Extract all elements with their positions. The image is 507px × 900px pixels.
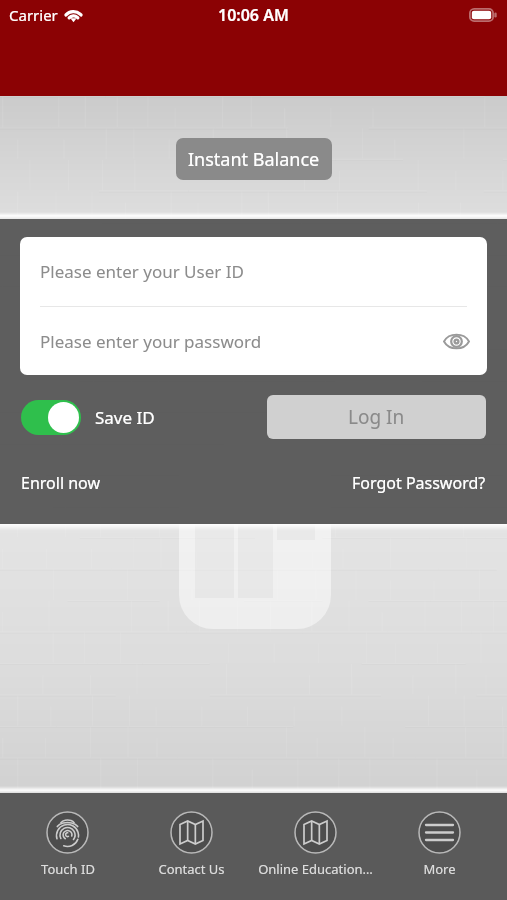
staticText: More: [423, 860, 456, 878]
button[interactable]: Instant Balance: [176, 138, 332, 180]
staticText: Online Education…: [258, 860, 373, 878]
staticText: Log In: [348, 404, 405, 430]
staticText: Please enter your password: [40, 330, 262, 353]
staticText: Touch ID: [41, 860, 95, 878]
button[interactable]: Please enter your password: [20, 307, 487, 375]
staticText: 10:06 AM: [218, 4, 289, 26]
button[interactable]: Contact Us: [129, 793, 253, 878]
staticText: Contact Us: [158, 860, 225, 878]
staticText: Carrier: [9, 5, 58, 25]
button[interactable]: More: [377, 793, 501, 878]
staticText: Please enter your User ID: [40, 260, 244, 283]
button[interactable]: Please enter your User ID: [20, 237, 487, 306]
button[interactable]: Forgot Password?: [352, 472, 486, 494]
staticText: Instant Balance: [188, 147, 320, 172]
button[interactable]: Online Education…: [253, 793, 377, 878]
staticText: Enroll now: [21, 472, 100, 494]
button[interactable]: Enroll now: [21, 472, 100, 494]
staticText: Forgot Password?: [352, 472, 486, 494]
staticText: Save ID: [95, 406, 155, 429]
button[interactable]: Touch ID: [6, 793, 129, 878]
button[interactable]: Save ID: [21, 400, 155, 435]
button[interactable]: Log In: [267, 395, 486, 439]
button[interactable]: Show password: [439, 324, 473, 358]
